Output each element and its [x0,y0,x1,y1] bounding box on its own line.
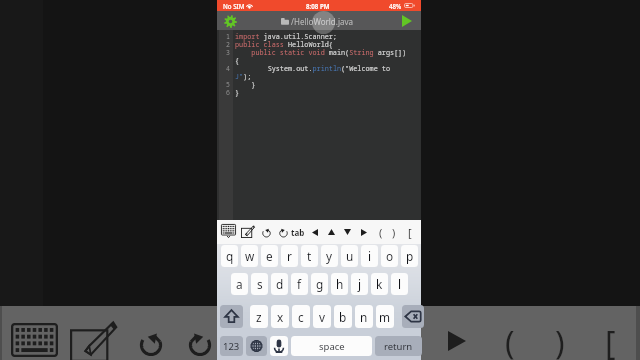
staticText: q [226,248,234,264]
button[interactable]: Keyboard [221,224,236,238]
button[interactable]: h [331,273,348,295]
button[interactable]: Open bracket [405,225,415,239]
button[interactable]: f [291,273,308,295]
staticText: 123 [223,340,240,353]
staticText: 1 [226,32,230,41]
button[interactable]: Close paren [550,321,570,360]
staticText: l [398,276,402,292]
staticText: z [256,309,262,325]
button[interactable]: 123 [220,336,243,356]
staticText: 4 [226,64,230,73]
staticText: s [257,276,263,292]
staticText: 8:08 PM [306,2,330,10]
button[interactable]: k [371,273,388,295]
staticText: return [384,340,413,353]
staticText: ( [505,321,515,360]
staticText: u [346,248,354,264]
button[interactable]: Close paren [389,225,399,239]
staticText: No SIM [223,2,245,10]
button[interactable]: Edit [70,320,118,360]
staticText: 3 [226,48,230,57]
staticText: n [360,309,368,325]
button[interactable]: i [361,245,378,267]
staticText: g [316,276,324,292]
staticText: d [276,276,284,292]
button[interactable]: u [341,245,358,267]
staticText: [ [408,225,412,239]
button[interactable]: o [381,245,398,267]
button[interactable]: /HelloWorld.java [281,16,354,27]
button[interactable]: space [291,336,372,356]
button[interactable]: y [321,245,338,267]
staticText: import java.util.Scanner; public class H… [235,32,407,97]
staticText: y [326,248,333,264]
staticText: w [245,248,255,264]
button[interactable]: n [355,305,373,328]
button[interactable]: Dictation [270,336,288,356]
button[interactable]: Settings [223,14,237,28]
button[interactable]: Down [342,227,352,237]
button[interactable]: p [401,245,418,267]
button[interactable]: m [376,305,394,328]
button[interactable]: r [281,245,298,267]
button[interactable]: Undo [261,226,272,238]
button[interactable]: v [313,305,331,328]
staticText: h [336,276,344,292]
staticText: b [339,309,347,325]
button[interactable]: Redo [186,327,214,357]
button[interactable]: c [292,305,310,328]
button[interactable]: a [231,273,248,295]
staticText: v [319,309,325,325]
staticText: t [307,248,312,264]
staticText: e [266,248,273,264]
button[interactable]: g [311,273,328,295]
staticText: 2 [226,40,230,49]
staticText: ) [555,321,565,360]
button[interactable]: Run [399,13,415,29]
button[interactable]: Open paren [376,225,386,239]
staticText: k [376,276,383,292]
button[interactable]: Globe [246,336,267,356]
button[interactable]: b [334,305,352,328]
button[interactable]: l [391,273,408,295]
staticText: 6 [226,88,230,97]
staticText: 5 [226,80,230,89]
staticText: f [297,276,302,292]
button[interactable]: Left [310,227,320,237]
button[interactable]: Redo [278,226,289,238]
button[interactable]: return [375,336,422,356]
button[interactable]: w [241,245,258,267]
staticText: space [319,340,345,353]
button[interactable]: Edit [241,225,255,238]
button[interactable]: q [221,245,238,267]
button[interactable]: d [271,273,288,295]
button[interactable]: e [261,245,278,267]
button[interactable]: j [351,273,368,295]
staticText: [ [605,321,616,360]
button[interactable]: Shift [220,305,243,328]
staticText: tab [291,227,305,238]
button[interactable]: Keyboard [11,323,58,357]
button[interactable]: Up [326,227,336,237]
button[interactable]: Open paren [500,321,520,360]
button[interactable]: Tab [290,226,306,238]
button[interactable]: s [251,273,268,295]
staticText: r [287,248,292,264]
staticText: ) [392,225,396,239]
staticText: j [358,276,362,292]
staticText: /HelloWorld.java [291,16,354,27]
button[interactable]: Right [359,227,369,237]
button[interactable]: Open bracket [600,321,620,360]
staticText: p [406,248,414,264]
staticText: a [236,276,243,292]
button[interactable]: x [271,305,289,328]
button[interactable]: t [301,245,318,267]
button[interactable]: Undo [137,327,165,357]
button[interactable]: Play [445,330,469,352]
staticText: o [386,248,394,264]
staticText: c [298,309,304,325]
staticText: m [379,309,391,325]
staticText: i [368,248,372,264]
button[interactable]: z [250,305,268,328]
button[interactable]: Backspace [402,305,424,328]
